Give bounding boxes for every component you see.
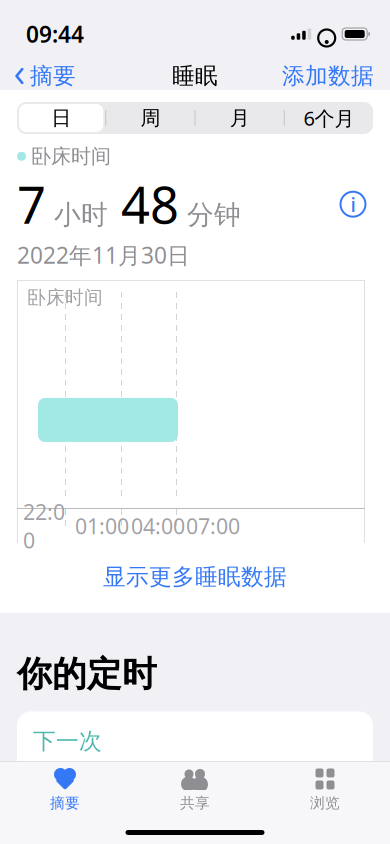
staticText: 小时 <box>46 199 108 231</box>
staticText: 04:00 <box>131 512 185 540</box>
staticText: 01:00 <box>75 512 129 540</box>
staticText: 09:44 <box>26 19 84 49</box>
button[interactable]: 显示更多睡眠数据 <box>0 549 390 605</box>
staticText: 摘要 <box>50 794 80 812</box>
button[interactable]: 周 <box>106 102 194 134</box>
staticText: 起床 – 无闹钟 <box>221 765 336 823</box>
staticText: 23:20 <box>33 795 141 844</box>
staticText: i <box>350 191 355 217</box>
staticText: 显示更多睡眠数据 <box>103 563 287 591</box>
staticText: 7 <box>17 171 46 238</box>
button[interactable]: 添加数据 <box>282 54 390 98</box>
staticText: 就寝 <box>57 765 103 793</box>
button[interactable]: 浏览 <box>260 760 390 812</box>
staticText: 2022年11月30日 <box>17 240 190 270</box>
staticText: 22:00 <box>23 498 65 554</box>
staticText: 月 <box>230 106 250 130</box>
button[interactable]: 月 <box>195 102 284 134</box>
staticText: 卧床时间 <box>27 286 103 309</box>
staticText: 睡眠 <box>172 62 218 90</box>
staticText: 浏览 <box>310 794 340 812</box>
button[interactable]: 摘要 <box>0 760 130 812</box>
button[interactable]: 更多信息 <box>333 184 373 224</box>
button[interactable]: 共享 <box>130 760 260 812</box>
staticText: 48 <box>108 171 179 238</box>
staticText: 下一次 <box>33 727 102 755</box>
button[interactable]: 日 <box>17 102 105 134</box>
staticText: 6个月 <box>303 105 354 131</box>
staticText: 摘要 <box>30 62 76 90</box>
staticText: 07:00 <box>186 512 240 540</box>
staticText: 共享 <box>180 794 210 812</box>
staticText: 07:20 <box>198 825 306 844</box>
staticText: 添加数据 <box>282 62 374 90</box>
staticText: 周 <box>140 106 160 130</box>
staticText: 日 <box>51 106 71 130</box>
staticText: 分钟 <box>179 199 241 231</box>
staticText: 你的定时 <box>17 653 157 695</box>
button[interactable]: 摘要 <box>0 54 76 98</box>
staticText: 卧床时间 <box>31 144 111 169</box>
button[interactable]: 6个月 <box>285 102 373 134</box>
